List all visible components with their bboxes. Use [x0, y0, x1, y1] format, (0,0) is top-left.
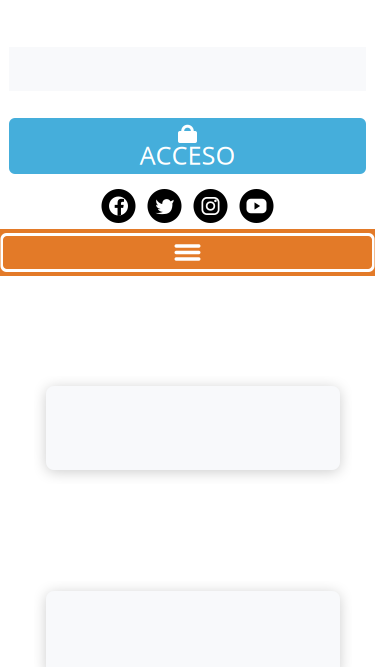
button[interactable]: Twitter — [141, 188, 187, 224]
staticText: ACCESO — [139, 138, 235, 172]
button[interactable]: Instagram — [187, 188, 233, 224]
button[interactable]: ACCESO — [9, 118, 366, 174]
button[interactable]: YouTube — [233, 188, 279, 224]
button[interactable]: Facebook — [95, 188, 141, 224]
button[interactable]: Menu — [0, 229, 375, 276]
